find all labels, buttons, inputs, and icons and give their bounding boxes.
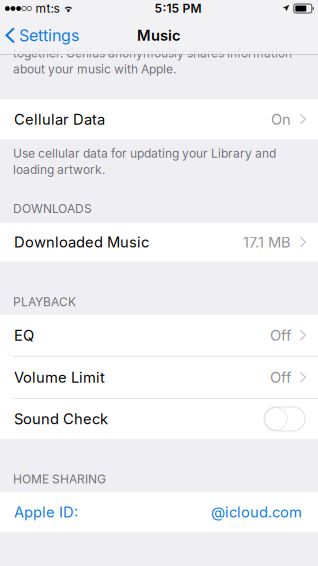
staticText: EQ bbox=[14, 327, 34, 344]
staticText: Apple ID: bbox=[14, 503, 78, 521]
staticText: about your music with Apple. bbox=[13, 62, 176, 76]
staticText: @icloud.com bbox=[211, 503, 302, 521]
staticText: Sound Check bbox=[14, 410, 108, 428]
staticText: HOME SHARING bbox=[13, 472, 106, 486]
staticText: 17.1 MB bbox=[243, 234, 291, 251]
button[interactable]: Settings bbox=[0, 17, 87, 54]
button[interactable]: Apple ID: bbox=[0, 492, 318, 532]
button[interactable]: EQ bbox=[0, 315, 318, 356]
button[interactable]: Sound Check bbox=[0, 399, 318, 439]
staticText: On bbox=[271, 111, 291, 128]
staticText: Downloaded Music bbox=[14, 234, 149, 251]
staticText: Settings bbox=[19, 26, 79, 45]
staticText: Off bbox=[270, 327, 291, 344]
staticText: loading artwork. bbox=[13, 162, 105, 177]
staticText: Music bbox=[137, 27, 181, 44]
staticText: DOWNLOADS bbox=[13, 202, 92, 216]
staticText: mt:s bbox=[35, 1, 59, 16]
staticText: Use cellular data for updating your Libr… bbox=[13, 146, 276, 160]
staticText: Cellular Data bbox=[14, 111, 105, 128]
button[interactable]: Volume Limit bbox=[0, 357, 318, 398]
staticText: 5:15 PM bbox=[155, 1, 202, 16]
button[interactable]: Cellular Data bbox=[0, 99, 318, 139]
staticText: Off bbox=[270, 369, 291, 386]
staticText: PLAYBACK bbox=[13, 295, 76, 309]
staticText: together. Genius anonymously shares info… bbox=[13, 46, 292, 60]
staticText: Volume Limit bbox=[14, 369, 105, 386]
button[interactable]: Downloaded Music bbox=[0, 223, 318, 262]
